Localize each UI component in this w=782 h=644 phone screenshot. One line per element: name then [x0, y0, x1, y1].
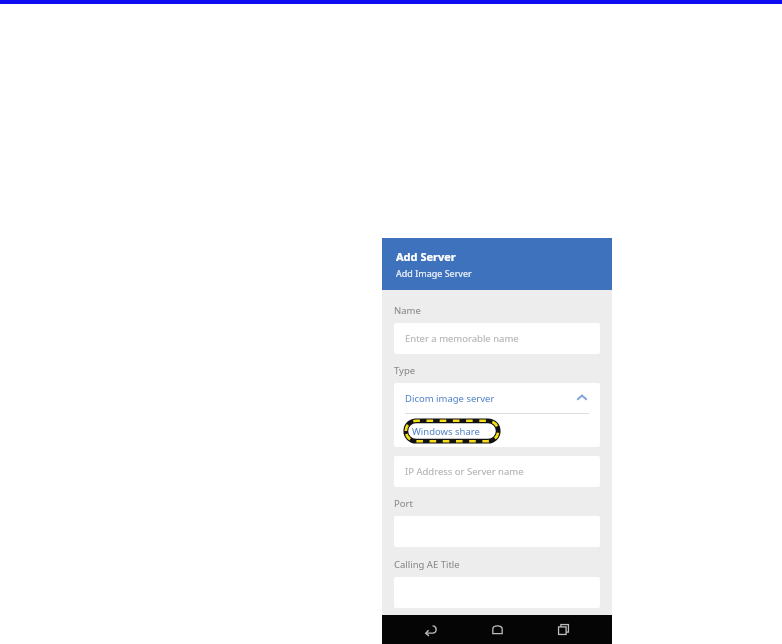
- staticText: Port: [394, 497, 413, 510]
- button[interactable]: IP Address or Server name: [394, 456, 600, 487]
- button[interactable]: Dicom image server: [394, 383, 600, 413]
- staticText: Add Server: [396, 249, 456, 264]
- staticText: Calling AE Title: [394, 558, 460, 571]
- staticText: Windows share: [412, 425, 480, 438]
- staticText: Add Image Server: [396, 267, 472, 279]
- button[interactable]: Back: [414, 615, 448, 644]
- button[interactable]: Enter a memorable name: [394, 323, 600, 354]
- other: Collapse type list: [575, 391, 589, 405]
- button[interactable]: Home: [480, 615, 514, 644]
- staticText: Type: [394, 364, 416, 377]
- button[interactable]: Recent apps: [546, 615, 580, 644]
- staticText: Enter a memorable name: [405, 332, 519, 345]
- button[interactable]: Windows share: [401, 416, 503, 446]
- staticText: IP Address or Server name: [405, 465, 524, 478]
- staticText: Name: [394, 304, 421, 317]
- staticText: Dicom image server: [405, 392, 495, 405]
- button[interactable]: Add Server: [382, 238, 612, 290]
